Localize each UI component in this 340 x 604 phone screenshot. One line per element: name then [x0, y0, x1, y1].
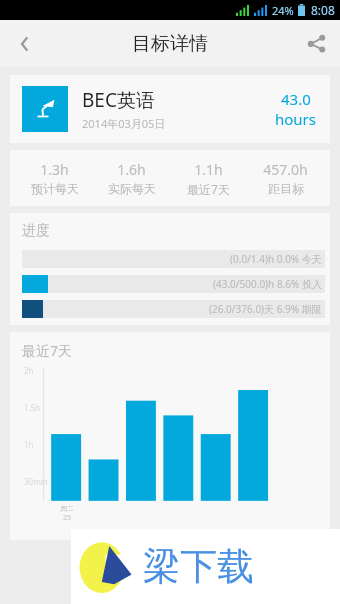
button[interactable]: (26.0/376.0)天 6.9% 期限 — [22, 300, 325, 318]
staticText: 梁下载 — [143, 543, 254, 590]
staticText: 24% — [272, 3, 294, 18]
staticText: (26.0/376.0)天 6.9% 期限 — [209, 302, 322, 316]
staticText: 最近7天 — [187, 181, 230, 197]
staticText: 25 — [63, 513, 72, 523]
staticText: 最近7天 — [22, 341, 73, 360]
button[interactable]: BEC英语 — [10, 75, 330, 143]
staticText: 周二 — [60, 504, 74, 513]
staticText: 1.3h — [40, 160, 69, 179]
staticText: 8:08 — [311, 2, 335, 18]
button[interactable]: (43.0/500.0)h 8.6% 投入 — [22, 275, 325, 293]
staticText: 实际每天 — [108, 181, 156, 196]
staticText: hours — [275, 109, 316, 129]
staticText: 目标详情 — [132, 32, 208, 56]
staticText: 43.0 — [281, 89, 311, 109]
staticText: 2h — [24, 365, 34, 376]
staticText: 距目标 — [268, 181, 304, 196]
button[interactable]: Share — [293, 20, 340, 67]
button[interactable]: (0.0/1.4)h 0.0% 今天 — [22, 250, 325, 268]
staticText: 进度 — [22, 222, 50, 240]
staticText: 30min — [24, 476, 48, 487]
staticText: BEC英语 — [82, 87, 155, 113]
staticText: 1h — [24, 439, 34, 450]
staticText: 1.5h — [24, 402, 41, 413]
button[interactable]: 1.3h — [16, 160, 93, 196]
staticText: (43.0/500.0)h 8.6% 投入 — [213, 277, 322, 291]
staticText: 2014年03月05日 — [82, 116, 166, 131]
staticText: 1.1h — [194, 160, 223, 179]
button[interactable]: 1.6h — [93, 160, 170, 196]
button[interactable]: 1.1h — [170, 160, 247, 197]
button[interactable]: 457.0h — [247, 160, 324, 196]
staticText: 1.6h — [117, 160, 146, 179]
staticText: 预计每天 — [31, 181, 79, 196]
staticText: 457.0h — [263, 160, 308, 179]
staticText: (0.0/1.4)h 0.0% 今天 — [230, 252, 322, 266]
button[interactable]: Back — [0, 20, 47, 67]
